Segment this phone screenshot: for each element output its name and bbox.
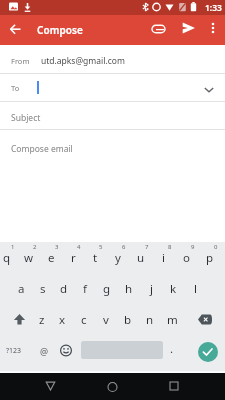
staticText: ?123 bbox=[6, 346, 22, 356]
staticText: q bbox=[3, 250, 11, 266]
staticText: d bbox=[60, 281, 68, 297]
staticText: r bbox=[71, 250, 76, 266]
button[interactable]: @ bbox=[33, 335, 55, 366]
button[interactable] bbox=[0, 15, 31, 45]
staticText: To bbox=[11, 83, 20, 93]
button[interactable]: l bbox=[184, 273, 206, 304]
staticText: i bbox=[162, 250, 165, 266]
staticText: 2 bbox=[33, 243, 37, 251]
staticText: Compose bbox=[37, 23, 84, 37]
button[interactable]: ?123 bbox=[0, 335, 27, 366]
button[interactable]: b bbox=[117, 304, 139, 335]
button[interactable] bbox=[140, 15, 168, 45]
button[interactable]: j bbox=[140, 273, 162, 304]
button[interactable] bbox=[183, 304, 225, 335]
button[interactable]: From bbox=[0, 45, 225, 73]
button[interactable] bbox=[55, 335, 77, 366]
button[interactable] bbox=[93, 373, 132, 400]
staticText: From bbox=[11, 56, 30, 66]
button[interactable]: e bbox=[40, 242, 62, 273]
button[interactable]: f bbox=[74, 273, 96, 304]
staticText: v bbox=[103, 312, 109, 328]
button[interactable] bbox=[154, 373, 194, 400]
button[interactable]: Compose email bbox=[0, 130, 225, 242]
staticText: b bbox=[124, 312, 132, 328]
button[interactable]: o bbox=[175, 242, 198, 273]
button[interactable]: y bbox=[106, 242, 129, 273]
staticText: u bbox=[137, 250, 145, 266]
staticText: Compose email bbox=[11, 143, 73, 155]
staticText: m bbox=[167, 312, 178, 328]
staticText: w bbox=[24, 250, 34, 266]
staticText: . bbox=[170, 341, 174, 357]
staticText: 1 bbox=[11, 243, 15, 251]
staticText: utd.apks@gmail.com bbox=[41, 55, 125, 67]
staticText: k bbox=[170, 281, 177, 297]
button[interactable] bbox=[31, 373, 70, 400]
staticText: 3 bbox=[55, 243, 59, 251]
staticText: 1:33 bbox=[205, 2, 222, 14]
button[interactable]: t bbox=[84, 242, 106, 273]
button[interactable]: k bbox=[162, 273, 184, 304]
button[interactable]: To bbox=[0, 74, 225, 101]
staticText: e bbox=[48, 250, 55, 266]
staticText: 9 bbox=[191, 243, 195, 251]
button[interactable]: m bbox=[161, 304, 183, 335]
button[interactable]: x bbox=[52, 304, 73, 335]
staticText: a bbox=[18, 281, 25, 297]
staticText: j bbox=[150, 281, 153, 297]
button[interactable]: u bbox=[129, 242, 152, 273]
staticText: 7 bbox=[145, 243, 149, 251]
staticText: z bbox=[39, 312, 45, 328]
staticText: s bbox=[40, 281, 46, 297]
button[interactable] bbox=[198, 342, 218, 362]
button[interactable]: p bbox=[198, 242, 221, 273]
staticText: p bbox=[206, 250, 214, 266]
button[interactable]: a bbox=[11, 273, 32, 304]
button[interactable]: c bbox=[73, 304, 95, 335]
button[interactable]: h bbox=[118, 273, 140, 304]
staticText: o bbox=[183, 250, 190, 266]
button[interactable] bbox=[168, 15, 200, 45]
button[interactable]: n bbox=[139, 304, 161, 335]
staticText: 8 bbox=[168, 243, 172, 251]
staticText: y bbox=[115, 250, 121, 266]
button[interactable]: g bbox=[96, 273, 118, 304]
staticText: f bbox=[83, 281, 87, 297]
staticText: g bbox=[103, 281, 111, 297]
button[interactable]: q bbox=[0, 242, 18, 273]
staticText: c bbox=[81, 312, 87, 328]
button[interactable] bbox=[200, 15, 225, 45]
staticText: t bbox=[93, 250, 98, 266]
button[interactable]: d bbox=[53, 273, 74, 304]
button[interactable]: Subject bbox=[0, 102, 225, 129]
button[interactable]: r bbox=[62, 242, 84, 273]
staticText: 6 bbox=[122, 243, 126, 251]
button[interactable] bbox=[0, 304, 31, 335]
staticText: n bbox=[146, 312, 154, 328]
staticText: Subject bbox=[11, 112, 41, 124]
staticText: @ bbox=[40, 345, 49, 357]
staticText: x bbox=[59, 312, 66, 328]
staticText: h bbox=[125, 281, 133, 297]
staticText: 0 bbox=[214, 243, 218, 251]
button[interactable]: . bbox=[163, 335, 181, 366]
button[interactable]: z bbox=[31, 304, 52, 335]
staticText: l bbox=[194, 281, 197, 297]
button[interactable]: s bbox=[32, 273, 53, 304]
button[interactable]: w bbox=[18, 242, 40, 273]
button[interactable]: v bbox=[95, 304, 117, 335]
button[interactable]: i bbox=[152, 242, 175, 273]
staticText: 4 bbox=[77, 243, 81, 251]
staticText: 5 bbox=[99, 243, 103, 251]
